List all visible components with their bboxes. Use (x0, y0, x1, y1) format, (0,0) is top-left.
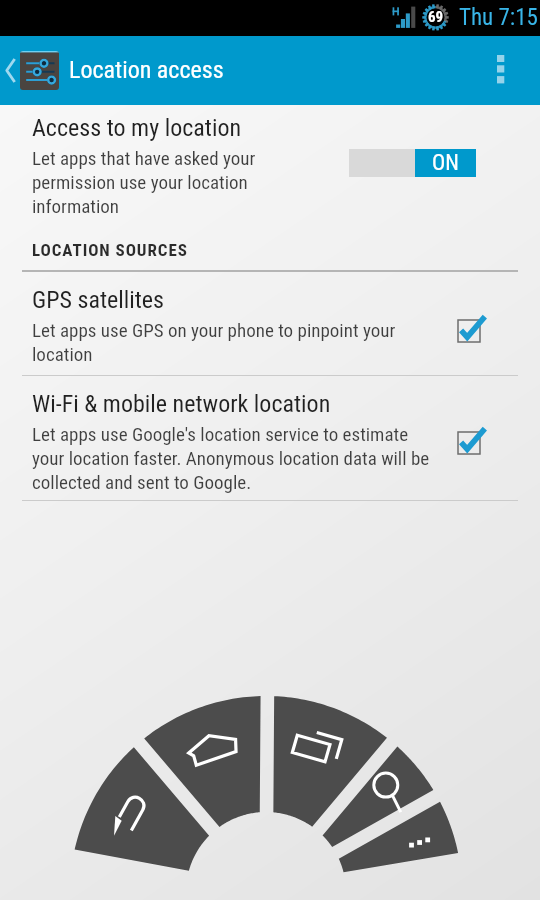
staticText: Let apps that have asked your permission… (32, 147, 332, 218)
button[interactable]: GPS satellites (0, 286, 540, 390)
staticText: Let apps use Google's location service t… (32, 423, 437, 494)
button[interactable]: ON (349, 149, 476, 177)
button[interactable]: Toggle (449, 423, 489, 463)
button[interactable]: More options (479, 36, 523, 105)
other: Navigate up (0, 36, 20, 105)
staticText: ON (432, 150, 459, 176)
staticText: Wi-Fi & mobile network location (32, 390, 331, 418)
staticText: Location access (69, 56, 224, 84)
staticText: Let apps use GPS on your phone to pinpoi… (32, 319, 437, 366)
staticText: Access to my location (32, 114, 242, 142)
button[interactable]: Toggle (449, 311, 489, 351)
staticText: LOCATION SOURCES (32, 240, 188, 260)
button[interactable]: Navigate up (0, 36, 540, 105)
button[interactable]: Wi-Fi & mobile network location (0, 390, 540, 494)
staticText: GPS satellites (32, 286, 165, 314)
staticText: Thu 7:15 (459, 4, 538, 31)
staticText: 69 (425, 8, 446, 26)
